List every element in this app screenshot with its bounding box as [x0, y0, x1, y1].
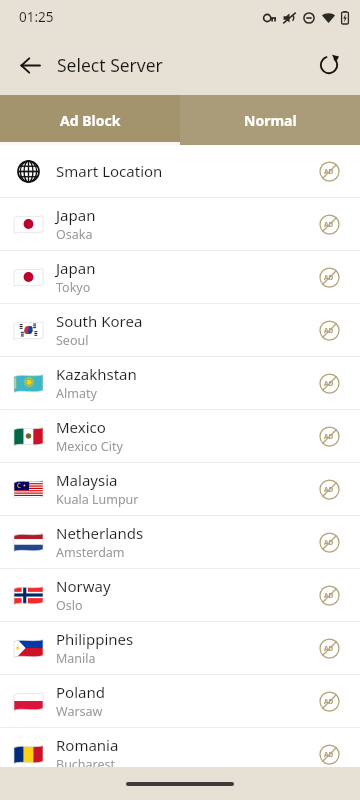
staticText: AD [324, 591, 334, 600]
staticText: Japan [56, 205, 96, 225]
button[interactable]: Normal [180, 95, 360, 145]
button[interactable]: Ad block enabled [312, 631, 346, 665]
button[interactable]: Ad block enabled [312, 366, 346, 400]
button[interactable]: Ad block enabled [312, 419, 346, 453]
button[interactable]: Kazakhstan [0, 357, 360, 409]
button[interactable]: Ad block enabled [312, 684, 346, 718]
staticText: Normal [244, 111, 297, 130]
button[interactable]: Ad block enabled [312, 525, 346, 559]
staticText: Select Server [57, 53, 163, 77]
button[interactable]: Ad block enabled [312, 313, 346, 347]
staticText: Amsterdam [56, 544, 125, 561]
button[interactable]: Ad block enabled [312, 472, 346, 506]
staticText: AD [324, 432, 334, 441]
button[interactable]: Romania [0, 728, 360, 767]
button[interactable]: Ad block enabled [312, 737, 346, 767]
staticText: Norway [56, 576, 111, 596]
staticText: Philippines [56, 629, 134, 649]
staticText: AD [324, 697, 334, 706]
staticText: AD [324, 167, 334, 176]
button[interactable]: Ad block enabled [312, 154, 346, 188]
staticText: Osaka [56, 226, 93, 243]
button[interactable]: Ad block enabled [312, 578, 346, 612]
button[interactable]: Netherlands [0, 516, 360, 568]
staticText: AD [324, 485, 334, 494]
staticText: Kazakhstan [56, 364, 137, 384]
button[interactable]: Norway [0, 569, 360, 621]
staticText: AD [324, 379, 334, 388]
button[interactable]: Japan [0, 251, 360, 303]
staticText: AD [324, 750, 334, 759]
staticText: AD [324, 220, 334, 229]
button[interactable]: Back [8, 43, 52, 87]
staticText: Netherlands [56, 523, 144, 543]
staticText: South Korea [56, 311, 143, 331]
button[interactable]: Philippines [0, 622, 360, 674]
staticText: Oslo [56, 597, 83, 614]
staticText: Seoul [56, 332, 89, 349]
button[interactable]: Mexico [0, 410, 360, 462]
button[interactable]: Japan [0, 198, 360, 250]
staticText: Manila [56, 650, 96, 667]
button[interactable]: Malaysia [0, 463, 360, 515]
staticText: Mexico City [56, 438, 123, 455]
staticText: Tokyo [56, 279, 91, 296]
staticText: Warsaw [56, 703, 103, 720]
button[interactable]: Ad block enabled [312, 260, 346, 294]
button[interactable]: Ad Block [0, 95, 180, 145]
staticText: Bucharest [56, 756, 116, 767]
staticText: Kuala Lumpur [56, 491, 139, 508]
staticText: AD [324, 538, 334, 547]
staticText: AD [324, 273, 334, 282]
staticText: Almaty [56, 385, 97, 402]
staticText: Mexico [56, 417, 106, 437]
button[interactable]: Refresh [307, 43, 351, 87]
staticText: Malaysia [56, 470, 118, 490]
staticText: Ad Block [60, 111, 121, 130]
staticText: AD [324, 326, 334, 335]
staticText: Japan [56, 258, 96, 278]
button[interactable]: Ad block enabled [312, 207, 346, 241]
staticText: Poland [56, 682, 105, 702]
staticText: Romania [56, 735, 119, 755]
staticText: Smart Location [56, 161, 163, 181]
button[interactable]: Poland [0, 675, 360, 727]
button[interactable]: South Korea [0, 304, 360, 356]
button[interactable]: Smart Location [0, 145, 360, 197]
staticText: 01:25 [19, 8, 54, 26]
staticText: AD [324, 644, 334, 653]
